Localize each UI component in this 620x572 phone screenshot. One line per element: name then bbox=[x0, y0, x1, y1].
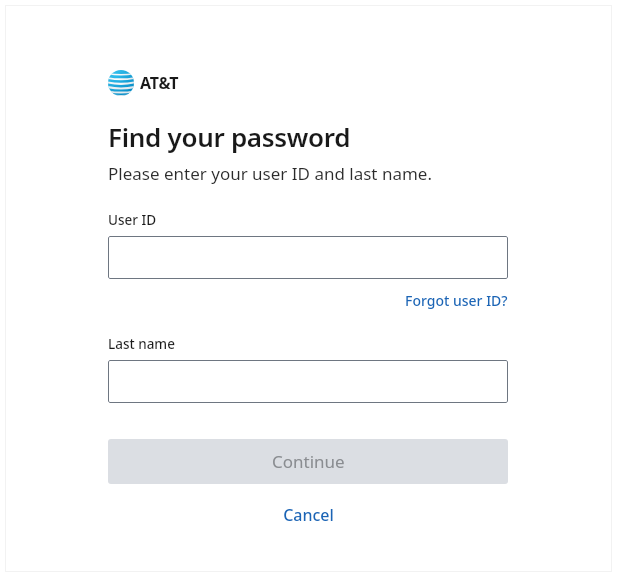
button[interactable]: Continue bbox=[108, 439, 508, 484]
staticText: AT&T bbox=[140, 72, 179, 94]
staticText: Find your password bbox=[108, 119, 351, 154]
staticText: Continue bbox=[272, 450, 345, 473]
staticText: Cancel bbox=[283, 504, 334, 526]
button[interactable]: Cancel bbox=[275, 500, 342, 530]
button[interactable]: User ID input field bbox=[108, 236, 508, 279]
button[interactable]: Forgot user ID? bbox=[405, 291, 508, 310]
staticText: Please enter your user ID and last name. bbox=[108, 162, 433, 185]
staticText: User ID bbox=[108, 211, 157, 229]
staticText: Forgot user ID? bbox=[405, 291, 508, 310]
button[interactable]: Last name input field bbox=[108, 360, 508, 403]
staticText: Last name bbox=[108, 335, 175, 353]
